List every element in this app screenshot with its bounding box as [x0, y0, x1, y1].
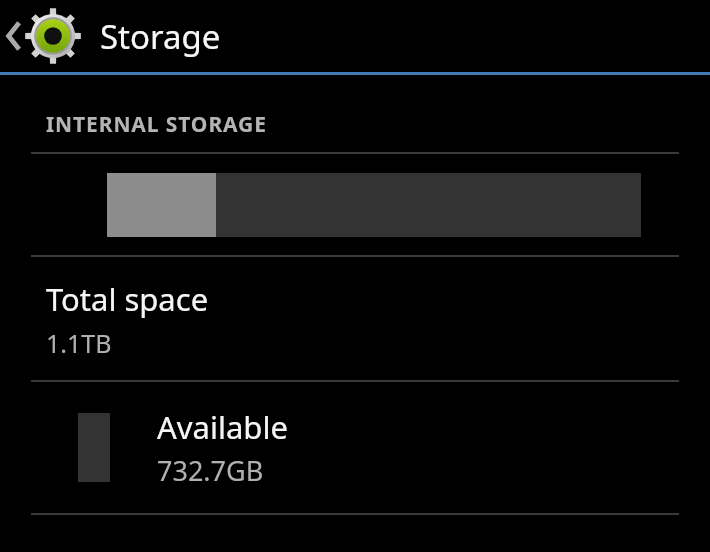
staticText: 1.1TB	[46, 326, 112, 360]
staticText: INTERNAL STORAGE	[46, 110, 267, 139]
button[interactable]: Available	[0, 382, 710, 513]
staticText: Available	[157, 406, 288, 448]
button[interactable]: Navigate up	[0, 0, 81, 72]
staticText: 732.7GB	[157, 452, 264, 489]
staticText: Storage	[100, 14, 221, 59]
staticText: Total space	[46, 278, 209, 320]
button[interactable]: Total space	[0, 257, 710, 380]
